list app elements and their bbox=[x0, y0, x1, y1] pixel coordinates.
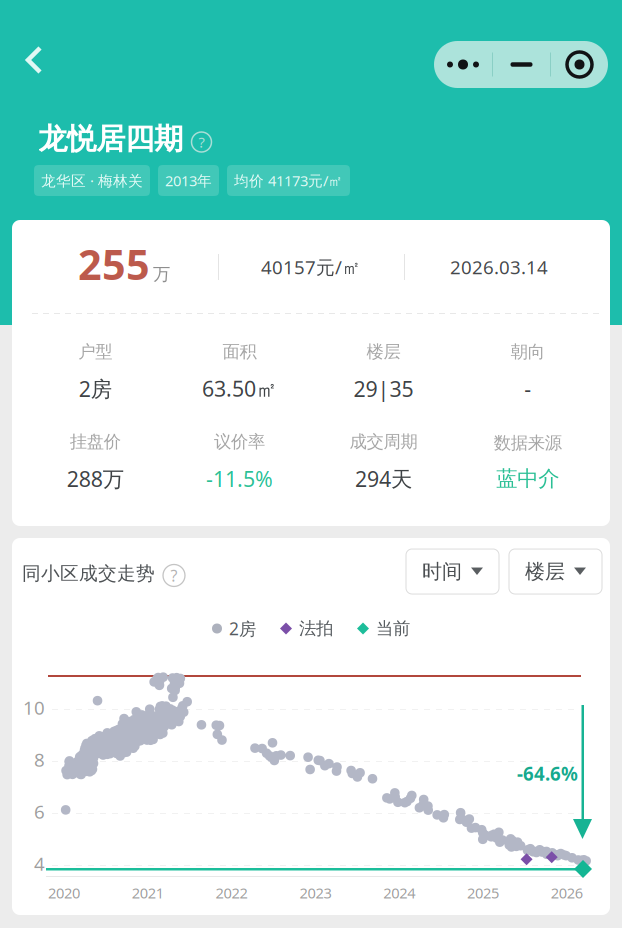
staticText: 8 bbox=[34, 747, 45, 772]
staticText: ? bbox=[170, 565, 177, 586]
staticText: 数据来源 bbox=[494, 432, 562, 454]
button[interactable]: 楼层 bbox=[509, 549, 602, 594]
staticText: 2房 bbox=[79, 374, 112, 403]
staticText: 面积 bbox=[222, 341, 256, 362]
staticText: 时间 bbox=[422, 559, 462, 584]
staticText: 龙华区 · 梅林关 bbox=[41, 171, 143, 190]
staticText: 255 bbox=[78, 237, 150, 291]
staticText: 2024 bbox=[383, 883, 415, 902]
staticText: 户型 bbox=[78, 341, 112, 362]
staticText: 当前 bbox=[376, 618, 410, 639]
staticText: 均价 41173元/㎡ bbox=[234, 171, 343, 190]
staticText: -11.5% bbox=[206, 464, 273, 493]
staticText: 楼层 bbox=[367, 341, 401, 362]
staticText: ? bbox=[198, 132, 204, 152]
staticText: 10 bbox=[23, 695, 45, 720]
button[interactable]: More bbox=[434, 41, 492, 88]
staticText: 龙悦居四期 bbox=[38, 121, 183, 157]
staticText: 40157元/㎡ bbox=[261, 255, 361, 279]
staticText: 6 bbox=[34, 799, 45, 824]
button[interactable]: 时间 bbox=[406, 549, 499, 594]
staticText: 法拍 bbox=[299, 618, 333, 639]
staticText: 2013年 bbox=[165, 171, 212, 190]
staticText: 2026.03.14 bbox=[450, 255, 548, 279]
staticText: 294天 bbox=[355, 464, 412, 493]
staticText: 2020 bbox=[48, 883, 80, 902]
staticText: 同小区成交走势 bbox=[22, 562, 155, 585]
staticText: 29|35 bbox=[354, 374, 414, 403]
button[interactable]: Close bbox=[551, 41, 608, 88]
staticText: 挂盘价 bbox=[70, 431, 121, 452]
staticText: 朝向 bbox=[511, 341, 545, 362]
staticText: 2021 bbox=[132, 883, 164, 902]
button[interactable]: Minimize bbox=[493, 41, 550, 88]
staticText: - bbox=[524, 374, 531, 403]
staticText: 议价率 bbox=[214, 431, 265, 452]
staticText: 2026 bbox=[551, 883, 583, 902]
button[interactable]: Back bbox=[25, 45, 61, 81]
staticText: 2025 bbox=[467, 883, 499, 902]
staticText: 288万 bbox=[67, 464, 124, 493]
staticText: 4 bbox=[34, 851, 45, 876]
staticText: 2022 bbox=[216, 883, 248, 902]
staticText: 楼层 bbox=[525, 559, 565, 584]
staticText: -64.6% bbox=[517, 761, 578, 786]
staticText: 2023 bbox=[299, 883, 331, 902]
staticText: 成交周期 bbox=[350, 431, 418, 452]
staticText: 蓝中介 bbox=[496, 465, 559, 492]
staticText: 63.50㎡ bbox=[202, 374, 277, 403]
staticText: 万 bbox=[153, 264, 170, 285]
staticText: 2房 bbox=[229, 617, 256, 640]
